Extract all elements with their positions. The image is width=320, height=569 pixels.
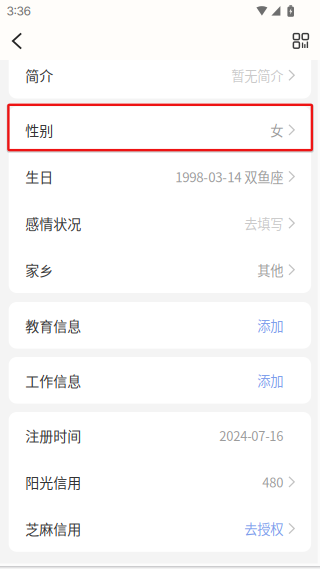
staticText: 家乡 [25,260,53,280]
button[interactable]: Back [0,23,34,59]
button[interactable]: 简介 [9,52,311,98]
button[interactable]: 阳光信用 [9,459,311,505]
staticText: 3:36 [7,4,32,18]
staticText: 感情状况 [25,213,81,233]
staticText: 芝麻信用 [25,518,81,539]
staticText: 1998-03-14 双鱼座 [175,167,283,186]
staticText: 2024-07-16 [219,426,283,445]
button[interactable]: 芝麻信用 [9,505,311,552]
staticText: 480 [262,472,283,491]
staticText: 工作信息 [25,370,81,390]
staticText: 添加 [257,316,283,335]
button[interactable]: Scan QR code [284,23,318,59]
staticText: 添加 [257,371,283,390]
staticText: 注册时间 [25,425,81,445]
button[interactable]: 感情状况 [9,200,311,246]
staticText: 女 [270,120,283,139]
button[interactable]: 注册时间 [9,412,311,459]
staticText: 去填写 [244,213,283,233]
staticText: 性别 [25,120,53,140]
staticText: 阳光信用 [25,472,81,492]
staticText: 去授权 [244,519,283,538]
button[interactable]: 家乡 [9,246,311,293]
staticText: 生日 [25,166,53,187]
button[interactable]: 工作信息 [9,357,311,404]
button[interactable]: 性别 [9,107,311,153]
staticText: 暂无简介 [231,65,283,85]
button[interactable]: 教育信息 [9,302,311,349]
staticText: 教育信息 [25,315,81,335]
button[interactable]: 生日 [9,153,311,200]
staticText: 其他 [257,260,283,279]
staticText: 简介 [25,65,53,85]
